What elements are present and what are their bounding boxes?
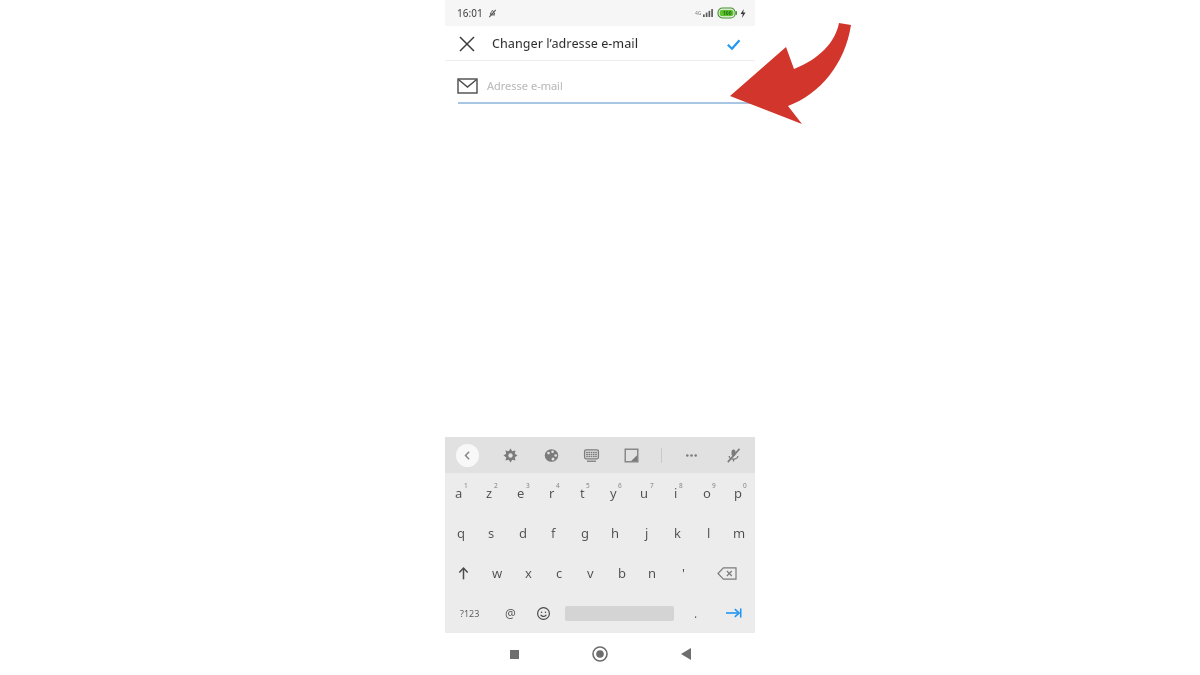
staticText: g [581, 524, 589, 542]
button[interactable]: Thème [531, 437, 571, 473]
staticText: 4 [556, 481, 560, 490]
staticText: p [734, 484, 742, 502]
button[interactable]: Espace [560, 593, 679, 633]
button[interactable]: s [476, 513, 507, 553]
button[interactable]: z [476, 473, 507, 513]
button[interactable]: o [693, 473, 724, 513]
button[interactable]: h [600, 513, 631, 553]
button[interactable]: a [445, 473, 476, 513]
button[interactable]: j [631, 513, 662, 553]
staticText: 16:01 [457, 6, 483, 20]
staticText: 7 [650, 481, 654, 490]
button[interactable]: t [569, 473, 600, 513]
staticText: q [457, 524, 465, 542]
button[interactable]: v [575, 553, 606, 593]
button[interactable]: i [662, 473, 693, 513]
button[interactable]: x [513, 553, 544, 593]
staticText: m [733, 524, 746, 542]
button[interactable]: ' [668, 553, 699, 593]
button[interactable]: Majuscule [445, 553, 482, 593]
staticText: i [674, 484, 678, 502]
button[interactable]: Retour [669, 637, 703, 671]
staticText: 0 [743, 481, 747, 490]
button[interactable]: q [445, 513, 476, 553]
button[interactable]: b [606, 553, 637, 593]
button[interactable]: Fermer [453, 30, 481, 58]
staticText: e [517, 484, 525, 502]
staticText: . [694, 605, 698, 621]
button[interactable]: Applications récentes [497, 637, 531, 671]
staticText: 6 [618, 481, 622, 490]
staticText: h [611, 524, 620, 542]
button[interactable]: @ [494, 593, 527, 633]
staticText: 100 [723, 10, 732, 17]
button[interactable]: m [724, 513, 755, 553]
staticText: n [648, 564, 657, 582]
staticText: 2 [494, 481, 498, 490]
staticText: d [519, 524, 527, 542]
button[interactable]: Accueil [583, 637, 617, 671]
staticText: c [556, 564, 563, 582]
staticText: x [525, 564, 532, 582]
staticText: 9 [712, 481, 716, 490]
button[interactable]: w [482, 553, 513, 593]
staticText: j [645, 524, 649, 542]
button[interactable]: Emoji [527, 593, 560, 633]
button[interactable]: n [637, 553, 668, 593]
button[interactable]: Redimensionner [611, 437, 651, 473]
staticText: 1 [464, 481, 468, 490]
staticText: ?123 [460, 607, 480, 619]
button[interactable]: Paramètres [490, 437, 531, 473]
button[interactable]: g [569, 513, 600, 553]
staticText: 5 [586, 481, 590, 490]
button[interactable]: ?123 [445, 593, 494, 633]
staticText: v [587, 564, 594, 582]
staticText: u [640, 484, 649, 502]
button[interactable]: c [544, 553, 575, 593]
staticText: a [455, 484, 463, 502]
button[interactable]: . [679, 593, 712, 633]
button[interactable]: d [507, 513, 538, 553]
button[interactable]: p [724, 473, 755, 513]
staticText: 4G [695, 10, 702, 17]
staticText: y [610, 484, 617, 502]
button[interactable]: Retour [445, 437, 490, 473]
staticText: f [551, 524, 556, 542]
staticText: t [580, 484, 585, 502]
staticText: b [618, 564, 626, 582]
button[interactable]: l [693, 513, 724, 553]
staticText: Changer l’adresse e-mail [492, 35, 639, 52]
button[interactable]: f [538, 513, 569, 553]
staticText: ' [682, 564, 685, 582]
staticText: 8 [679, 481, 683, 490]
button[interactable]: Micro désactivé [711, 437, 755, 473]
button[interactable]: e [507, 473, 538, 513]
staticText: @ [505, 605, 516, 621]
staticText: z [486, 484, 493, 502]
button[interactable]: Retour arrière [699, 553, 755, 593]
button[interactable]: y [600, 473, 631, 513]
staticText: w [492, 564, 503, 582]
button[interactable]: Plus d'options [671, 437, 711, 473]
staticText: k [674, 524, 681, 542]
staticText: l [707, 524, 711, 542]
button[interactable]: Valider [719, 30, 747, 58]
staticText: 3 [526, 481, 530, 490]
button[interactable]: u [631, 473, 662, 513]
button[interactable]: k [662, 513, 693, 553]
staticText: s [488, 524, 495, 542]
staticText: Adresse e-mail [487, 78, 563, 93]
button[interactable]: Suivant [712, 593, 755, 633]
button[interactable]: r [538, 473, 569, 513]
staticText: o [703, 484, 711, 502]
button[interactable]: Disposition du clavier [571, 437, 611, 473]
staticText: r [549, 484, 555, 502]
